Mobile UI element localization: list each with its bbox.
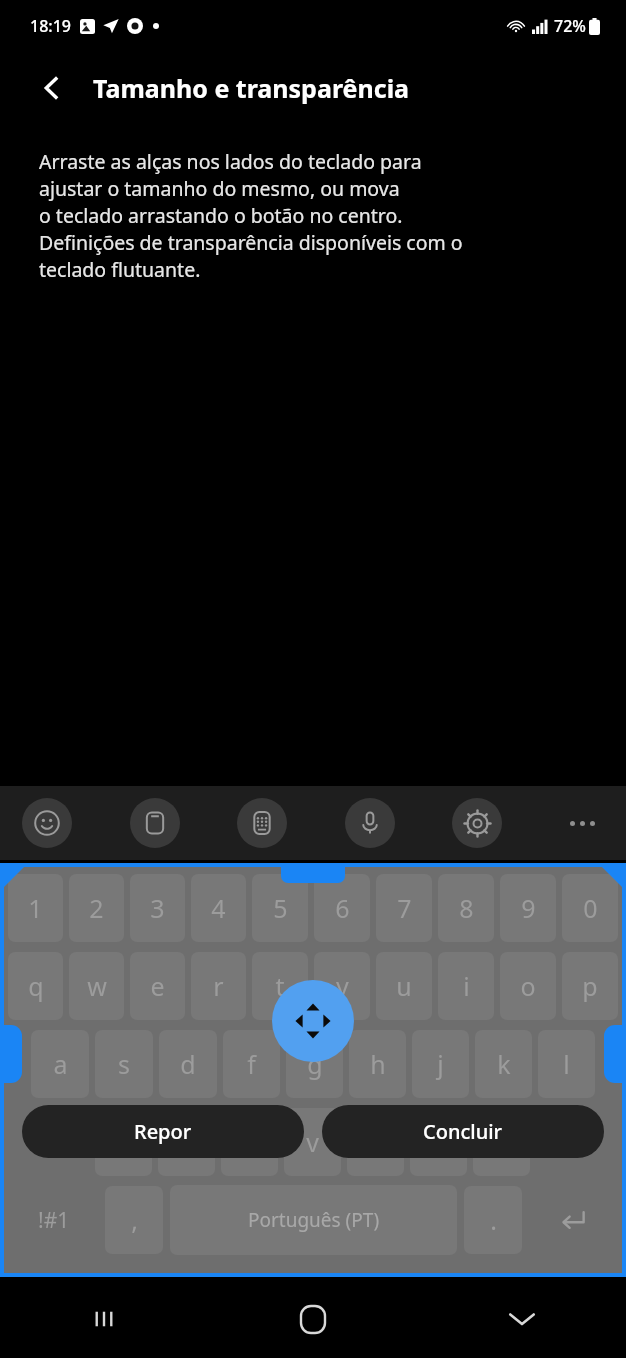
button[interactable]: n [410,1108,467,1176]
button[interactable]: s [95,1030,153,1098]
button[interactable]: d [159,1030,217,1098]
staticText: n [431,1125,447,1159]
button[interactable]: 3 [130,874,185,942]
staticText: l [563,1047,570,1081]
button[interactable]: 6 [314,874,370,942]
staticText: x [180,1125,194,1159]
button[interactable]: h [349,1030,406,1098]
button[interactable]: 7 [376,874,432,942]
staticText: f [247,1047,256,1081]
button[interactable]: j [412,1030,469,1098]
button[interactable]: Voice input [345,798,395,848]
staticText: s [118,1047,130,1081]
button[interactable]: g [286,1030,343,1098]
staticText: Português (PT) [248,1207,380,1233]
button[interactable]: m [473,1108,530,1176]
staticText: c [243,1125,256,1159]
staticText: !#1 [38,1206,70,1235]
button[interactable]: Clipboard [130,798,180,848]
button[interactable]: 9 [500,874,556,942]
staticText: , [131,1203,138,1237]
staticText: Arraste as alças nos lados do teclado pa… [39,148,422,175]
button[interactable]: Move keyboard [272,980,354,1062]
staticText: e [150,969,165,1003]
button[interactable]: f [223,1030,280,1098]
staticText: u [396,969,412,1003]
staticText: q [28,969,44,1003]
button[interactable]: w [69,952,124,1020]
staticText: teclado flutuante. [39,256,201,283]
button[interactable]: p [562,952,618,1020]
staticText: w [87,969,107,1003]
button[interactable]: t [252,952,308,1020]
staticText: j [437,1047,444,1081]
staticText: k [497,1047,511,1081]
button[interactable]: a [31,1030,89,1098]
button[interactable]: 5 [252,874,308,942]
button[interactable]: Hide keyboard [417,1280,626,1358]
staticText: o teclado arrastando o botão no centro. [39,202,403,229]
staticText: 9 [521,891,536,925]
button[interactable]: x [158,1108,215,1176]
button[interactable]: Repor [22,1105,304,1158]
button[interactable]: Home [208,1280,417,1358]
button[interactable]: o [500,952,556,1020]
button[interactable]: r [191,952,246,1020]
button[interactable]: Emoji [22,798,72,848]
staticText: i [463,969,470,1003]
staticText: t [275,969,285,1003]
button[interactable]: Resize left [0,1025,22,1083]
staticText: r [213,969,224,1003]
button[interactable]: 2 [69,874,124,942]
staticText: 3 [150,891,165,925]
staticText: 2 [89,891,104,925]
staticText: 1 [28,891,43,925]
staticText: p [582,969,598,1003]
button[interactable]: Settings [452,798,502,848]
staticText: Repor [134,1118,192,1145]
button[interactable]: 0 [562,874,618,942]
button[interactable]: v [284,1108,341,1176]
button[interactable]: Resize right [604,1025,626,1083]
button[interactable]: Recent apps [0,1280,208,1358]
button[interactable]: i [438,952,494,1020]
button[interactable]: 1 [8,874,63,942]
button[interactable]: Back [30,66,74,110]
button[interactable]: Concluir [322,1105,604,1158]
staticText: g [307,1047,323,1081]
button[interactable]: e [130,952,185,1020]
staticText: m [490,1125,514,1159]
button[interactable]: More options [560,801,604,845]
staticText: 7 [397,891,412,925]
staticText: a [53,1047,68,1081]
button[interactable]: k [475,1030,532,1098]
button[interactable]: l [538,1030,595,1098]
staticText: b [368,1125,384,1159]
staticText: 5 [273,891,288,925]
staticText: Definições de transparência disponíveis … [39,229,463,256]
staticText: Tamanho e transparência [93,71,410,105]
staticText: o [520,969,536,1003]
staticText: 4 [211,891,226,925]
button[interactable]: y [314,952,370,1020]
staticText: ajustar o tamanho do mesmo, ou mova [39,175,400,202]
staticText: 6 [335,891,350,925]
button[interactable]: c [221,1108,278,1176]
button[interactable]: Keypad [237,798,287,848]
staticText: 8 [459,891,474,925]
staticText: y [336,969,349,1003]
button[interactable]: Resize top [281,863,345,883]
staticText: 18:19 [30,15,71,37]
staticText: v [306,1125,319,1159]
button[interactable]: u [376,952,432,1020]
button[interactable]: 8 [438,874,494,942]
staticText: z [118,1125,130,1159]
staticText: Concluir [423,1118,503,1145]
button[interactable]: q [8,952,63,1020]
button[interactable]: z [95,1108,152,1176]
button[interactable]: b [347,1108,404,1176]
button[interactable]: 4 [191,874,246,942]
staticText: 72% [554,15,586,37]
